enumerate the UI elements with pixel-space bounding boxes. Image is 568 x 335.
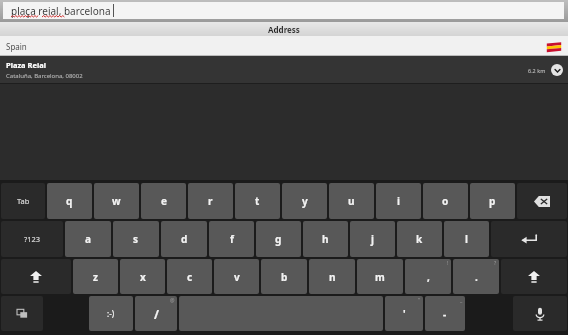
staticText: ' [403,307,406,321]
button[interactable]: plaça reial, barcelona [3,2,564,19]
button[interactable]: c [167,259,212,294]
staticText: v [234,270,240,284]
button[interactable]: Backspace [517,183,567,219]
button[interactable]: t [235,183,280,219]
button[interactable]: Shift [1,259,71,294]
staticText: r [208,194,213,208]
staticText: q [66,194,73,208]
button[interactable]: s [113,221,159,257]
staticText: h [322,232,329,246]
button[interactable]: q [47,183,92,219]
button[interactable]: ' [385,296,423,331]
button[interactable]: p [470,183,515,219]
staticText: b [281,270,288,284]
staticText: f [230,232,234,246]
button[interactable]: y [282,183,327,219]
button[interactable]: Shift [501,259,567,294]
staticText: g [275,232,282,246]
button[interactable]: z [73,259,118,294]
staticText: o [442,194,449,208]
button[interactable]: k [397,221,442,257]
staticText: plaça reial, barcelona [11,4,111,18]
button[interactable]: f [209,221,254,257]
staticText: ? [494,260,497,267]
button[interactable]: Plaza Reial [0,56,568,84]
button[interactable]: n [309,259,355,294]
staticText: a [85,232,91,246]
staticText: w [112,194,121,208]
button[interactable]: o [423,183,468,219]
staticText: j [371,232,374,246]
staticText: z [93,270,98,284]
staticText: m [375,270,385,284]
staticText: _ [460,297,463,304]
staticText: y [302,194,308,208]
staticText: 6.2 km [528,67,546,74]
staticText: , [427,270,430,284]
button[interactable]: :-) [89,296,133,331]
button[interactable]: Spain [0,36,568,56]
button[interactable]: b [261,259,307,294]
button[interactable]: i [376,183,421,219]
staticText: x [140,270,146,284]
button[interactable]: Expand [551,64,563,76]
button[interactable]: - [425,296,465,331]
button[interactable]: Voice input [513,296,567,331]
staticText: u [348,194,355,208]
button[interactable]: g [256,221,301,257]
button[interactable]: u [329,183,374,219]
staticText: d [181,232,188,246]
button[interactable]: / [135,296,177,331]
button[interactable]: v [214,259,259,294]
staticText: @ [170,297,175,304]
button[interactable]: h [303,221,348,257]
staticText: e [161,194,167,208]
button[interactable]: Switch keyboard [1,296,43,331]
button[interactable]: , [405,259,451,294]
staticText: c [187,270,193,284]
button[interactable]: r [188,183,233,219]
button[interactable]: m [357,259,403,294]
staticText: . [475,270,478,284]
staticText: Cataluña, Barcelona, 08002 [6,72,83,80]
staticText: k [416,232,423,246]
staticText: s [133,232,139,246]
staticText: ?123 [24,234,41,244]
staticText: :-) [107,308,115,319]
staticText: p [489,194,496,208]
button[interactable]: Tab [1,183,45,219]
staticText: Address [268,24,300,35]
staticText: Spain [6,41,27,52]
button[interactable]: j [350,221,395,257]
button[interactable]: a [65,221,111,257]
button[interactable]: e [141,183,186,219]
staticText: ! [447,260,449,267]
staticText: t [255,194,260,208]
staticText: n [329,270,336,284]
staticText: Tab [17,196,30,206]
staticText: / [154,306,159,322]
button[interactable]: Enter [491,221,567,257]
button[interactable]: . [453,259,499,294]
button[interactable]: d [161,221,207,257]
staticText: i [397,194,400,208]
staticText: l [465,232,468,246]
button[interactable]: ?123 [1,221,63,257]
staticText: - [443,307,447,321]
button[interactable]: l [444,221,489,257]
staticText: " [418,297,421,304]
staticText: Plaza Reial [6,60,46,70]
button[interactable]: x [120,259,165,294]
button[interactable]: w [94,183,139,219]
